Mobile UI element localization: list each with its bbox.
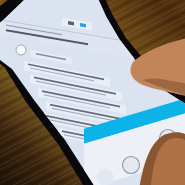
button[interactable]: Hand tapping a phone chat screen (0, 0, 185, 185)
